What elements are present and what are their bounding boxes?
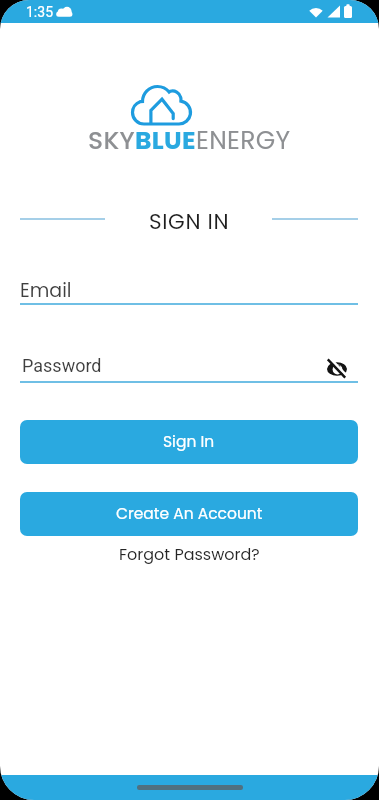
- staticText: SKY: [88, 123, 135, 158]
- staticText: 1:35: [26, 4, 53, 20]
- staticText: Email: [20, 277, 72, 304]
- staticText: ENERGY: [196, 123, 291, 158]
- staticText: BLUE: [135, 123, 196, 158]
- staticText: SIGN IN: [149, 206, 230, 232]
- button[interactable]: Create An Account: [20, 492, 358, 536]
- staticText: Sign In: [163, 431, 215, 453]
- button[interactable]: Sign In: [20, 420, 358, 464]
- button[interactable]: Forgot Password?: [119, 543, 260, 565]
- staticText: Password: [22, 355, 102, 376]
- button[interactable]: [324, 355, 350, 381]
- button[interactable]: [20, 345, 320, 383]
- button[interactable]: [20, 267, 358, 305]
- staticText: Create An Account: [116, 503, 263, 525]
